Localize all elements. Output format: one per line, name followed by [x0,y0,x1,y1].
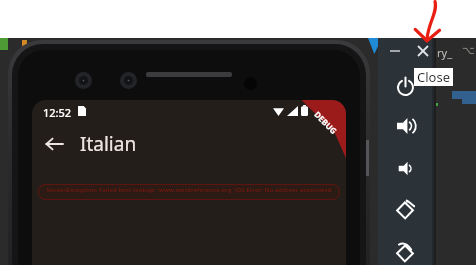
staticText: ⌥ [462,44,475,57]
staticText: DEBUG [312,109,340,136]
staticText: Italian [80,131,137,157]
button[interactable]: Rotate left [382,190,428,230]
staticText: 12:52 [43,105,72,120]
button[interactable]: Volume up [382,106,428,146]
button[interactable]: Rotate right [382,233,428,265]
button[interactable]: Volume down [382,148,428,188]
button[interactable]: Minimize [384,40,406,62]
button[interactable]: Power [382,66,428,106]
staticText: ry_ [437,45,453,60]
staticText: SocketException: Failed host lookup: 'ww… [46,186,332,194]
button[interactable]: Back [32,122,76,166]
button[interactable]: Close [412,40,434,62]
staticText: Close [417,68,450,86]
